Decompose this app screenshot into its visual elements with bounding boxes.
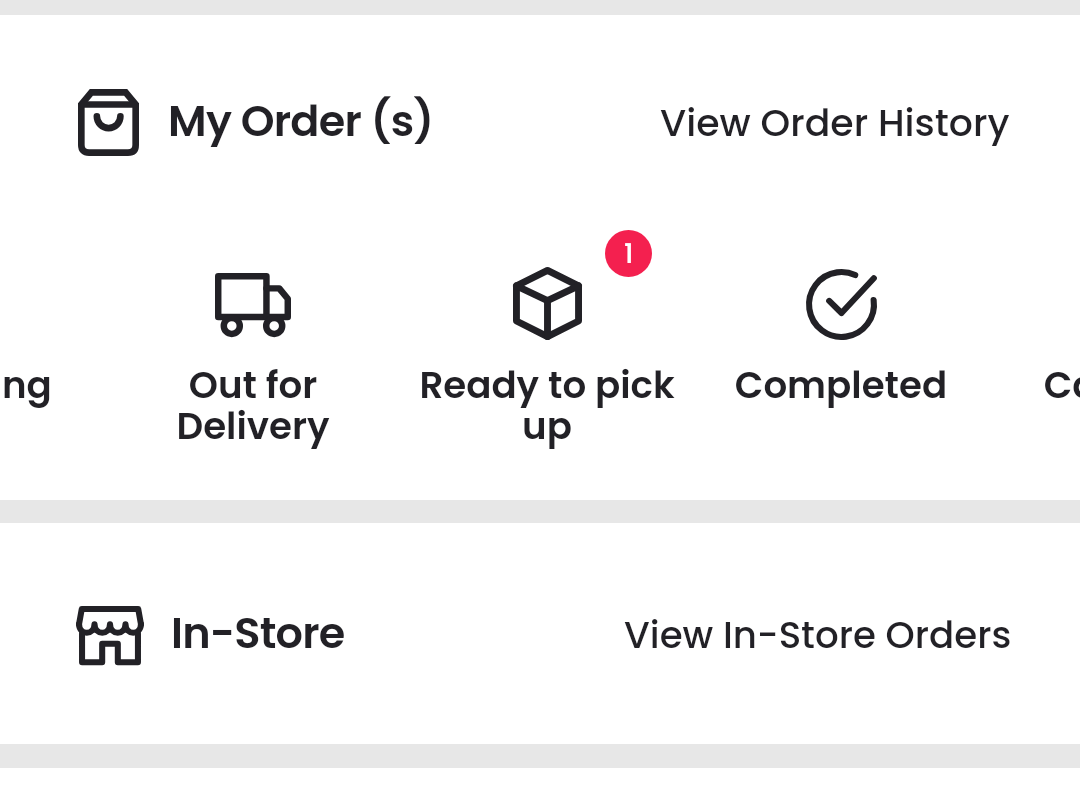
button[interactable]: Cancelled (1011, 255, 1080, 411)
button[interactable]: Completed (712, 255, 970, 411)
button[interactable]: View Order History (660, 96, 1010, 149)
staticText: Ready to pick up (418, 359, 676, 452)
staticText: View In-Store Orders (624, 609, 1012, 661)
button[interactable]: Ready to pick up (418, 255, 676, 452)
staticText: View Order History (660, 96, 1010, 149)
button[interactable]: In-Store (76, 605, 345, 665)
staticText: Completed (712, 359, 970, 411)
button[interactable]: 1 new order (605, 230, 652, 277)
button[interactable]: My Order (s) (78, 89, 434, 156)
staticText: My Order (s) (168, 91, 434, 151)
staticText: 1 (624, 235, 634, 273)
staticText: Out for Delivery (124, 359, 382, 452)
staticText: Processing (0, 359, 77, 411)
staticText: In-Store (171, 603, 345, 663)
button[interactable]: Out for Delivery (124, 255, 382, 452)
staticText: Cancelled (1011, 359, 1080, 411)
button[interactable]: View In-Store Orders (624, 609, 1012, 661)
button[interactable]: Processing (0, 255, 77, 411)
